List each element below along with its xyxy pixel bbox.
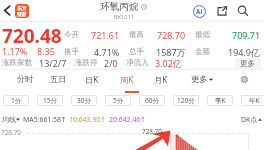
- button[interactable]: Share: [214, 3, 229, 18]
- staticText: 均线: [2, 115, 16, 124]
- staticText: 1587万: [156, 46, 186, 58]
- staticText: 728.70: [142, 127, 162, 136]
- staticText: Ai: [196, 7, 203, 16]
- button[interactable]: 净流入: [126, 57, 182, 69]
- staticText: 更多: [240, 59, 256, 69]
- button[interactable]: 年K: [241, 95, 264, 106]
- staticText: 3.02亿: [155, 57, 182, 69]
- button[interactable]: 总手: [129, 46, 186, 58]
- button[interactable]: 今开: [64, 29, 120, 41]
- button[interactable]: Chart settings: [236, 71, 252, 87]
- button[interactable]: 5分: [105, 95, 131, 106]
- staticText: 净流入: [126, 58, 149, 68]
- button[interactable]: 日K: [76, 71, 108, 87]
- staticText: 年K: [249, 96, 260, 105]
- staticText: 涨跌停: [75, 58, 98, 68]
- staticText: 721.61: [91, 29, 120, 41]
- staticText: 4.71%: [94, 46, 120, 58]
- staticText: 13/2/7: [39, 57, 67, 69]
- staticText: 720.48: [2, 23, 62, 49]
- staticText: 金额: [195, 47, 211, 57]
- staticText: 季K: [215, 96, 226, 105]
- button[interactable]: 15分: [37, 95, 63, 106]
- button[interactable]: DK点: [241, 115, 262, 124]
- button[interactable]: 120分: [173, 95, 199, 106]
- button[interactable]: 涨跌家数: [2, 57, 67, 69]
- staticText: 709.71: [232, 29, 261, 41]
- button[interactable]: 季K: [207, 95, 233, 106]
- button[interactable]: 月K: [145, 71, 177, 87]
- staticText: 月K: [154, 74, 168, 85]
- button[interactable]: 周K: [111, 71, 143, 87]
- button[interactable]: 均线: [2, 115, 20, 124]
- staticText: 环氧丙烷: [100, 1, 139, 13]
- button[interactable]: 环氧丙烷: [100, 1, 147, 21]
- staticText: 2/0: [104, 57, 118, 69]
- staticText: 更多: [191, 74, 208, 84]
- button[interactable]: 1分: [3, 95, 29, 106]
- staticText: 最低: [195, 30, 211, 40]
- staticText: 60分: [145, 96, 160, 105]
- button[interactable]: 最低: [195, 29, 261, 41]
- button[interactable]: 更多: [188, 71, 216, 87]
- button[interactable]: AI assistant: [191, 3, 207, 19]
- staticText: 东方: [17, 5, 27, 11]
- staticText: 1分: [11, 96, 22, 105]
- staticText: 日K: [85, 74, 99, 85]
- staticText: 最高: [129, 30, 145, 40]
- staticText: 10:643.90↑: [69, 115, 107, 124]
- staticText: 8.35: [37, 45, 55, 57]
- staticText: MA5:661.58↑: [23, 115, 67, 124]
- staticText: 财富: [17, 11, 27, 17]
- button[interactable]: 更多: [235, 58, 261, 69]
- button[interactable]: 五日: [42, 71, 74, 87]
- staticText: 30分: [77, 96, 92, 105]
- staticText: 今开: [64, 30, 80, 40]
- button[interactable]: 涨跌停: [75, 57, 118, 69]
- button[interactable]: 换手: [64, 46, 120, 58]
- staticText: 1.17%: [2, 45, 28, 57]
- staticText: 728.70: [1, 128, 21, 137]
- button[interactable]: 金额: [195, 46, 261, 58]
- button[interactable]: Back: [0, 3, 15, 18]
- staticText: 换手: [64, 47, 80, 57]
- button[interactable]: Search: [235, 3, 250, 18]
- staticText: 120分: [177, 96, 195, 105]
- staticText: 涨跌家数: [2, 58, 33, 68]
- staticText: 周K: [120, 74, 134, 85]
- staticText: BK1011: [114, 13, 134, 21]
- button[interactable]: 30分: [71, 95, 97, 106]
- button[interactable]: 最高: [129, 29, 186, 41]
- staticText: 194.9亿: [228, 46, 261, 58]
- staticText: 15分: [43, 96, 58, 105]
- button[interactable]: 60分: [139, 95, 165, 106]
- staticText: 总手: [129, 47, 145, 57]
- staticText: 5分: [113, 96, 124, 105]
- staticText: 20:642.46↑: [109, 115, 147, 124]
- staticText: DK点: [241, 115, 258, 124]
- staticText: 728.70: [157, 29, 186, 41]
- staticText: 五日: [50, 74, 67, 84]
- staticText: 分时: [17, 74, 34, 84]
- button[interactable]: Eastmoney logo: [15, 4, 29, 18]
- button[interactable]: 分时: [9, 71, 41, 87]
